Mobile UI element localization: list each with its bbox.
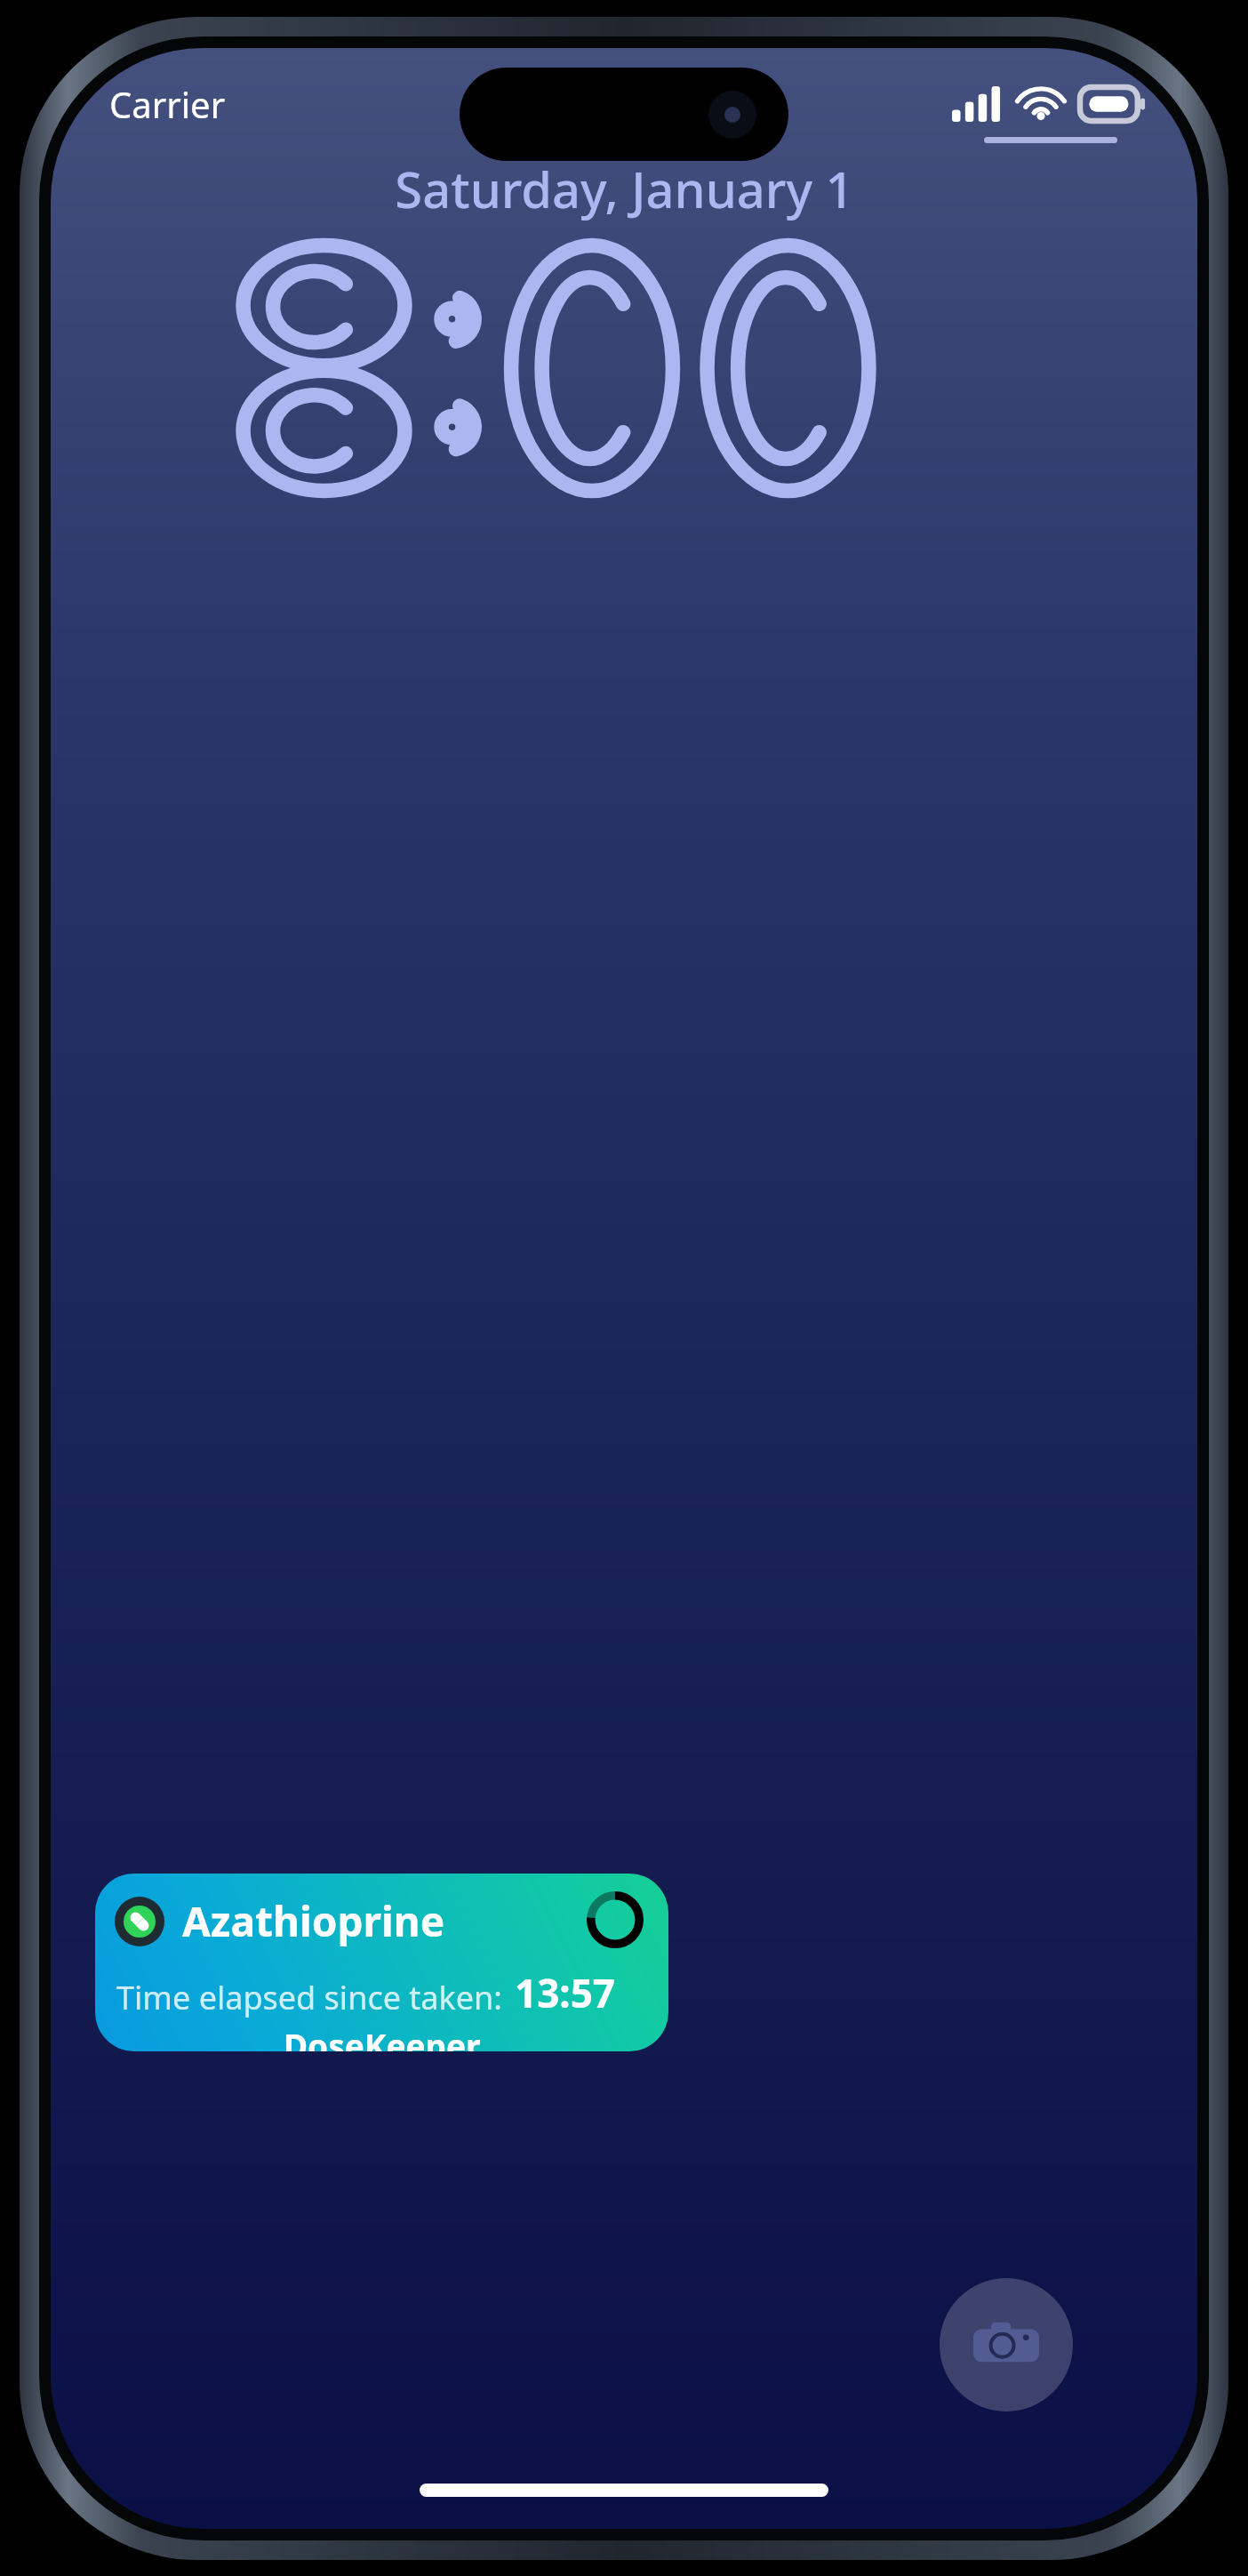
- button[interactable]: Azathioprine: [95, 1874, 668, 2051]
- other: Dose progress: [587, 1891, 644, 1948]
- staticText: Azathioprine: [182, 1893, 445, 1949]
- staticText: Time elapsed since taken:: [116, 1976, 502, 2019]
- staticText: DoseKeeper: [284, 2023, 481, 2051]
- staticText: Carrier: [109, 80, 226, 128]
- button[interactable]: Camera: [940, 2278, 1073, 2411]
- staticText: 13:57: [515, 1966, 616, 2019]
- staticText: Saturday, January 1: [395, 155, 854, 222]
